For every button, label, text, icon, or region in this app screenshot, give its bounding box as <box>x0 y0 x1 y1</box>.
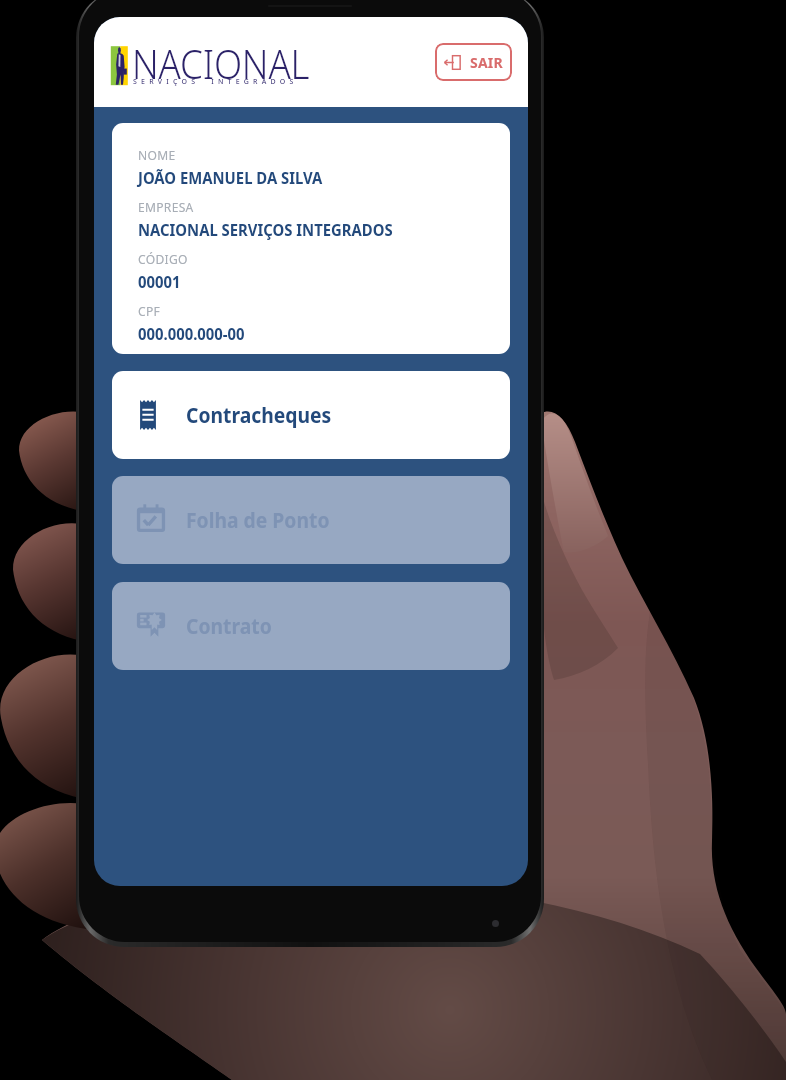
staticText: NACIONAL <box>132 35 310 85</box>
button[interactable]: Sair <box>435 43 512 81</box>
button[interactable]: Folha de Ponto <box>112 476 510 564</box>
staticText: EMPRESA <box>138 198 194 216</box>
button[interactable]: Contrato <box>112 582 510 670</box>
staticText: 000.000.000-00 <box>138 322 245 344</box>
staticText: 00001 <box>138 270 181 292</box>
staticText: Contracheques <box>186 401 331 430</box>
staticText: JOÃO EMANUEL DA SILVA <box>138 166 322 188</box>
staticText: Contrato <box>186 612 272 641</box>
button[interactable]: Contracheques <box>112 371 510 459</box>
staticText: Folha de Ponto <box>186 506 329 535</box>
staticText: CÓDIGO <box>138 250 188 268</box>
staticText: CPF <box>138 302 160 320</box>
staticText: NOME <box>138 146 176 164</box>
staticText: NACIONAL SERVIÇOS INTEGRADOS <box>138 218 393 240</box>
staticText: SERVIÇOS INTEGRADOS <box>133 77 298 87</box>
staticText: SAIR <box>470 53 503 72</box>
